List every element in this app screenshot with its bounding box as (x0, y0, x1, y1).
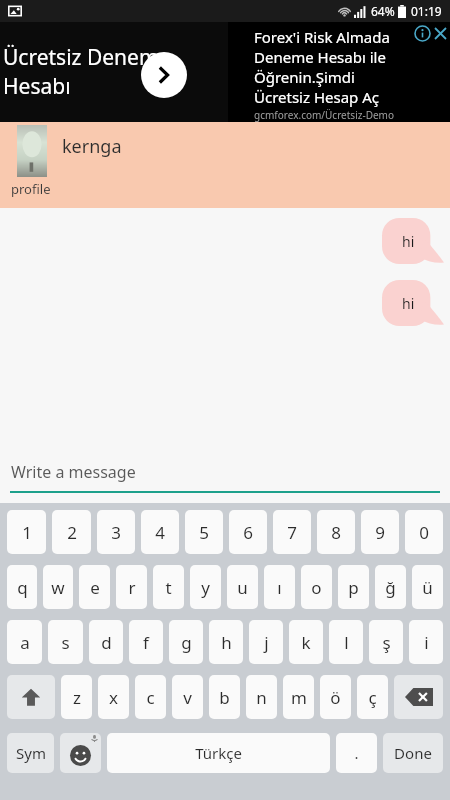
staticText: m (291, 686, 307, 709)
button[interactable]: o (301, 565, 332, 609)
button[interactable]: z (61, 675, 92, 719)
staticText: n (256, 686, 267, 709)
button[interactable]: t (153, 565, 184, 609)
button[interactable]: r (116, 565, 147, 609)
staticText: z (73, 686, 81, 709)
staticText: hi (402, 232, 415, 251)
staticText: Forex'i Risk Almada (254, 27, 390, 47)
button[interactable]: u (227, 565, 258, 609)
button[interactable]: i (409, 620, 443, 664)
staticText: u (237, 576, 248, 599)
button[interactable]: c (135, 675, 166, 719)
staticText: Sym (16, 743, 46, 763)
button[interactable]: 9 (361, 510, 399, 554)
button[interactable]: q (7, 565, 37, 609)
staticText: g (181, 631, 192, 654)
staticText: 64% (371, 3, 395, 19)
button[interactable]: a (7, 620, 42, 664)
staticText: . (354, 743, 359, 763)
button[interactable]: Sym (7, 733, 54, 773)
staticText: w (51, 576, 65, 599)
staticText: ü (422, 576, 433, 599)
button[interactable]: x (98, 675, 129, 719)
button[interactable]: . (336, 733, 377, 773)
button[interactable]: j (249, 620, 283, 664)
button[interactable]: Close ad (431, 24, 449, 42)
button[interactable]: 1 (7, 510, 46, 554)
button[interactable]: 2 (52, 510, 91, 554)
button[interactable]: h (209, 620, 243, 664)
staticText: a (20, 631, 30, 654)
staticText: kernga (62, 134, 122, 159)
button[interactable]: g (169, 620, 203, 664)
button[interactable]: 8 (317, 510, 355, 554)
button[interactable]: f (129, 620, 163, 664)
button[interactable]: d (89, 620, 123, 664)
button[interactable]: kernga (0, 122, 450, 208)
staticText: 8 (331, 521, 341, 544)
button[interactable]: 5 (185, 510, 223, 554)
button[interactable]: Ücretsiz Deneme (0, 22, 450, 122)
button[interactable]: ö (320, 675, 351, 719)
staticText: e (90, 576, 100, 599)
button[interactable]: e (79, 565, 110, 609)
button[interactable]: ç (357, 675, 388, 719)
staticText: q (17, 576, 28, 599)
button[interactable]: w (43, 565, 73, 609)
button[interactable]: n (246, 675, 277, 719)
button[interactable]: v (172, 675, 203, 719)
staticText: 4 (155, 521, 165, 544)
button[interactable]: ş (369, 620, 403, 664)
button[interactable]: Shift (7, 675, 55, 719)
button[interactable]: Türkçe (107, 733, 330, 773)
staticText: 9 (375, 521, 385, 544)
staticText: v (183, 686, 192, 709)
button[interactable]: ü (412, 565, 443, 609)
button[interactable]: Emoji (60, 733, 101, 773)
button[interactable]: Ad info (414, 25, 431, 42)
button[interactable]: 4 (141, 510, 179, 554)
button[interactable]: Write a message (0, 447, 450, 503)
button[interactable]: Backspace (394, 675, 443, 719)
staticText: Ücretsiz Deneme (3, 43, 171, 72)
staticText: ğ (385, 576, 396, 599)
button[interactable]: ğ (375, 565, 406, 609)
staticText: 2 (67, 521, 77, 544)
staticText: y (201, 576, 210, 599)
button[interactable]: k (289, 620, 323, 664)
button[interactable]: p (338, 565, 369, 609)
staticText: ı (277, 576, 282, 599)
staticText: p (348, 576, 359, 599)
button[interactable]: 0 (405, 510, 443, 554)
staticText: r (128, 576, 136, 599)
button[interactable]: 6 (229, 510, 267, 554)
button[interactable]: 7 (273, 510, 311, 554)
button[interactable]: s (48, 620, 83, 664)
staticText: f (143, 631, 149, 654)
staticText: h (221, 631, 232, 654)
button[interactable]: hi (382, 280, 444, 326)
staticText: Deneme Hesabı ile (254, 47, 386, 67)
staticText: t (165, 576, 172, 599)
button[interactable]: Open ad (141, 52, 187, 98)
staticText: l (344, 631, 349, 654)
staticText: ö (330, 686, 341, 709)
staticText: Write a message (11, 461, 136, 483)
button[interactable]: l (329, 620, 363, 664)
staticText: ş (382, 631, 391, 654)
button[interactable]: hi (382, 218, 444, 264)
button[interactable]: Done (383, 733, 443, 773)
staticText: 01:19 (411, 3, 442, 19)
staticText: 5 (199, 521, 209, 544)
button[interactable]: y (190, 565, 221, 609)
staticText: Done (394, 743, 432, 763)
button[interactable]: m (283, 675, 314, 719)
button[interactable]: b (209, 675, 240, 719)
staticText: o (311, 576, 322, 599)
staticText: Türkçe (195, 743, 242, 763)
button[interactable]: ı (264, 565, 295, 609)
staticText: j (264, 631, 269, 654)
staticText: Öğrenin.Şimdi (254, 67, 355, 87)
staticText: 6 (243, 521, 253, 544)
button[interactable]: 3 (97, 510, 135, 554)
